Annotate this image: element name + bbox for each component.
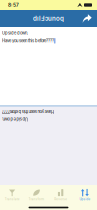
staticText: dılℲɔunoq (33, 15, 64, 22)
staticText: Have you seen this before???? (2, 38, 54, 43)
button[interactable]: Upside (73, 186, 97, 204)
button[interactable]: Translate (0, 186, 24, 204)
staticText: Translate (5, 197, 20, 201)
staticText: Have you seen this before???? (2, 109, 54, 114)
button[interactable]: Share (80, 11, 94, 25)
staticText: Reverse (54, 197, 67, 201)
staticText: Upside down. (2, 117, 28, 122)
button[interactable]: Reverse (48, 186, 73, 204)
button[interactable]: Transform (24, 186, 48, 204)
staticText: 8:57 (8, 2, 19, 8)
staticText: Upside (79, 197, 90, 201)
staticText: Transform (28, 197, 44, 201)
staticText: Upside down. (2, 30, 28, 35)
